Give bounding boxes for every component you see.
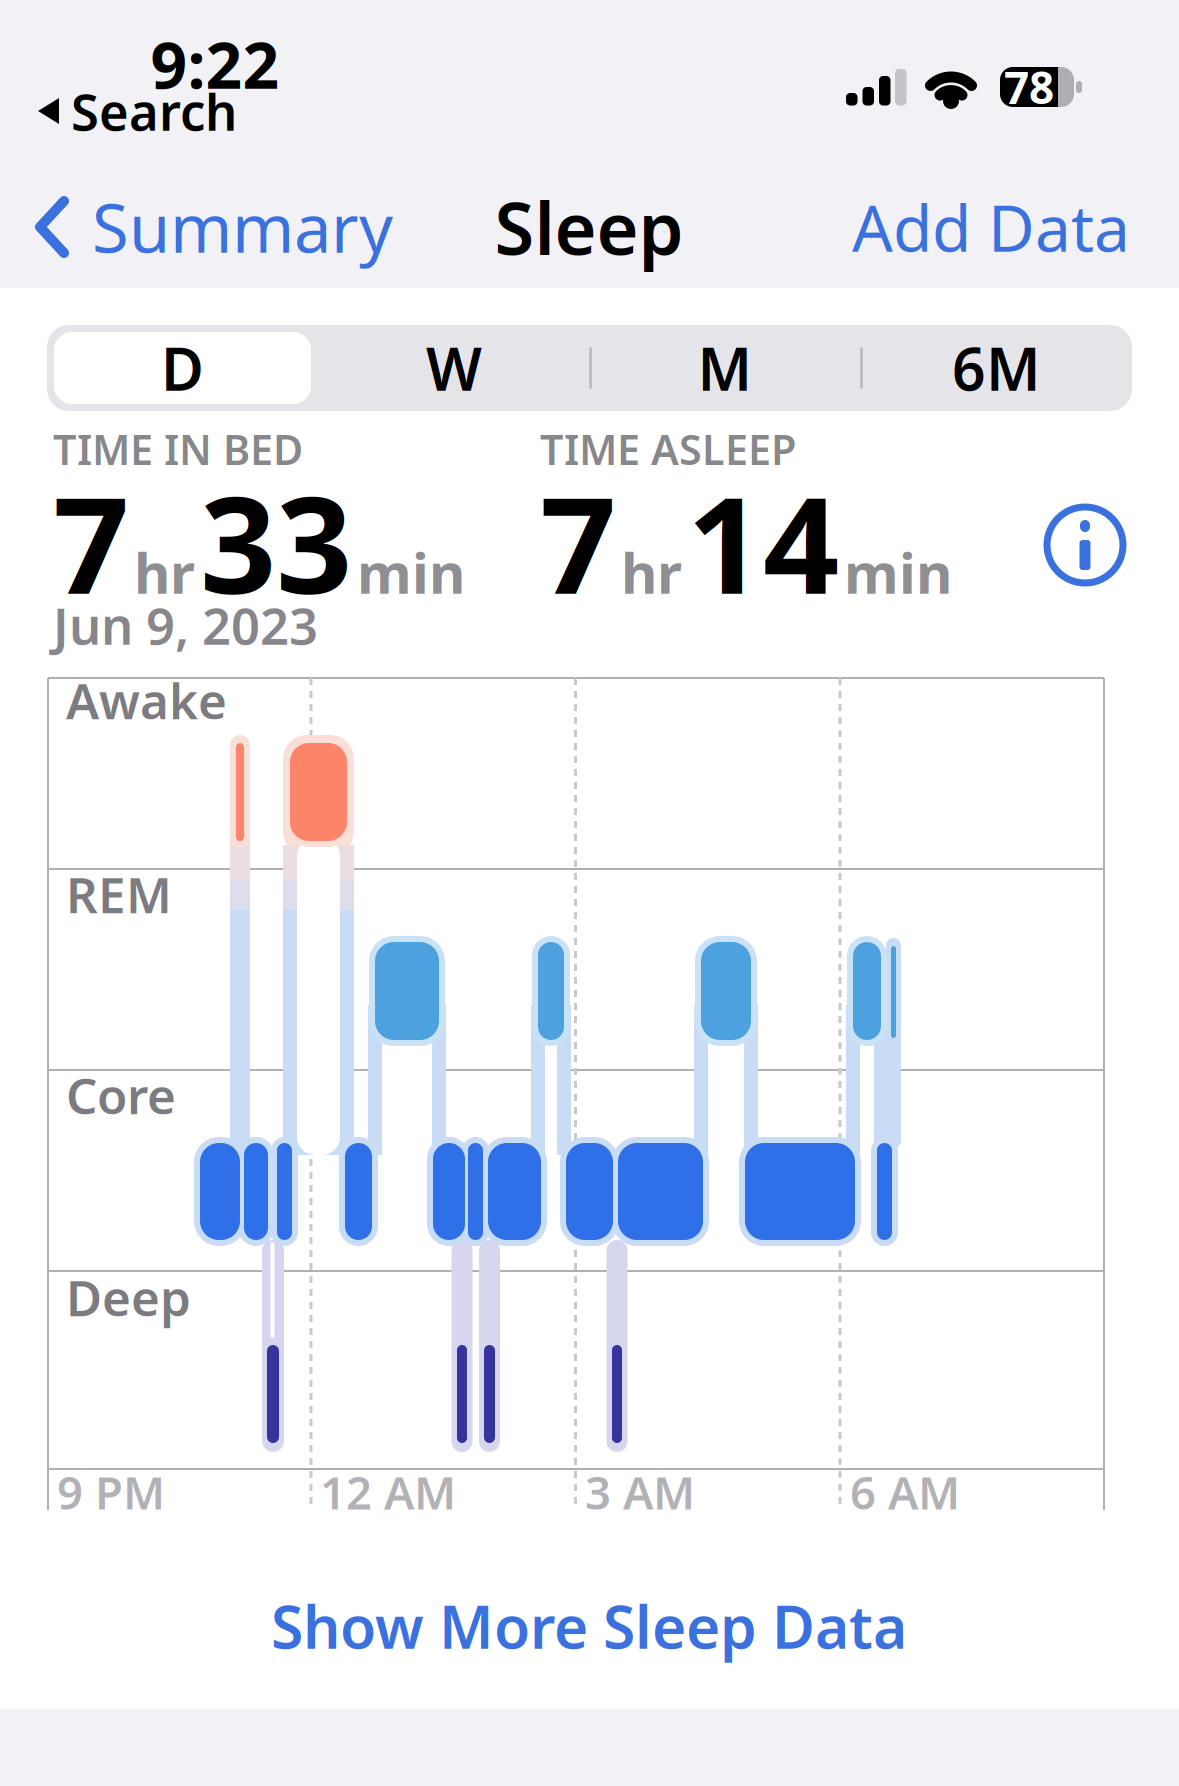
staticText: 33 — [200, 453, 352, 631]
staticText: M — [698, 329, 753, 407]
button[interactable]: Add Data — [852, 184, 1130, 269]
staticText: min — [357, 535, 465, 609]
staticText: 3 AM — [585, 1462, 695, 1522]
staticText: 12 AM — [320, 1462, 456, 1522]
button[interactable]: 6M — [876, 332, 1116, 404]
staticText: Summary — [92, 183, 393, 271]
button[interactable]: M — [605, 332, 845, 404]
button[interactable]: Back to Search — [38, 77, 237, 145]
staticText: Jun 9, 2023 — [53, 591, 318, 659]
staticText: 7 — [53, 453, 129, 631]
staticText: TIME IN BED — [53, 422, 303, 476]
staticText: 6 AM — [850, 1462, 960, 1522]
staticText: min — [844, 535, 952, 609]
button[interactable]: About Sleep — [1044, 504, 1126, 586]
staticText: hr — [134, 535, 195, 609]
staticText: Awake — [66, 667, 227, 733]
staticText: 9:22 — [150, 21, 279, 106]
button[interactable]: Back to Summary — [40, 183, 393, 271]
button[interactable]: W — [334, 332, 574, 404]
staticText: REM — [66, 861, 172, 927]
staticText: D — [161, 329, 204, 407]
staticText: hr — [621, 535, 682, 609]
button[interactable]: Show More Sleep Data — [271, 1587, 907, 1665]
staticText: Deep — [66, 1264, 191, 1330]
staticText: Core — [66, 1062, 176, 1128]
staticText: 6M — [952, 329, 1041, 407]
staticText: 7 — [540, 453, 616, 631]
staticText: Show More Sleep Data — [271, 1587, 907, 1665]
staticText: TIME ASLEEP — [540, 422, 796, 476]
button[interactable]: D — [54, 332, 311, 404]
staticText: 9 PM — [57, 1462, 165, 1522]
staticText: Add Data — [852, 184, 1130, 269]
staticText: 14 — [687, 453, 839, 631]
staticText: Search — [71, 77, 237, 145]
staticText: 78 — [1004, 58, 1054, 116]
staticText: W — [426, 329, 482, 407]
staticText: Sleep — [494, 179, 683, 275]
